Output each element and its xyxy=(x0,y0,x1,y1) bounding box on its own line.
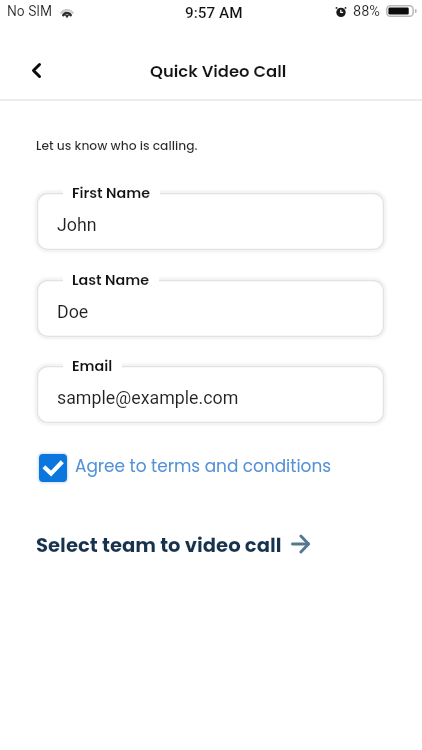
staticText: sample@example.com xyxy=(57,387,239,408)
staticText: 88% xyxy=(353,3,380,20)
staticText: Let us know who is calling. xyxy=(36,137,198,154)
staticText: Last Name xyxy=(72,270,150,290)
staticText: First Name xyxy=(72,183,151,203)
staticText: Quick Video Call xyxy=(150,60,287,83)
staticText: Select team to video call xyxy=(36,531,282,558)
staticText: 9:57 AM xyxy=(185,4,243,22)
staticText: Agree to terms and conditions xyxy=(75,454,332,478)
button[interactable]: Back xyxy=(17,51,55,89)
staticText: John xyxy=(57,214,97,235)
staticText: Email xyxy=(72,356,113,376)
staticText: Doe xyxy=(57,301,89,322)
button[interactable]: Select team to video call xyxy=(36,527,310,561)
button[interactable]: Agree to terms and conditions xyxy=(36,450,332,482)
staticText: No SIM xyxy=(7,3,53,19)
